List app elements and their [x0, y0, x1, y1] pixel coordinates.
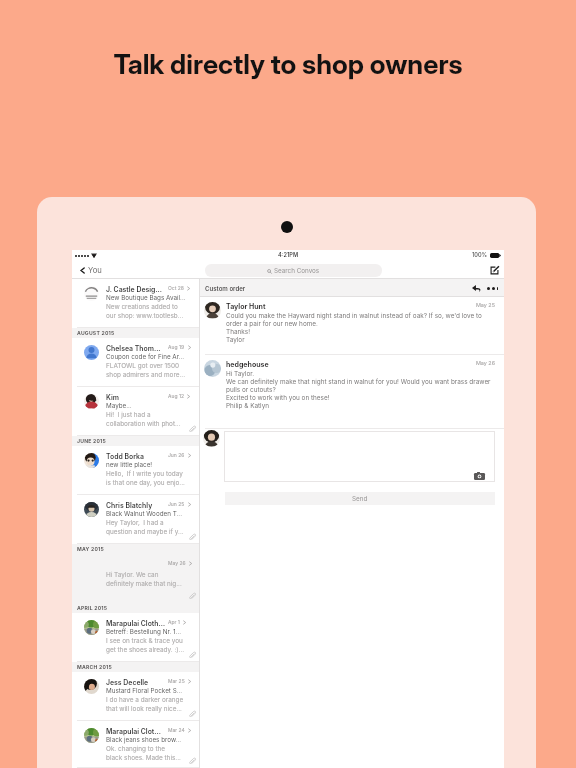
staticText: Marapulai Clot...: [106, 727, 166, 735]
staticText: hedgehouse: [226, 360, 269, 368]
button[interactable]: Oct 28: [72, 279, 199, 328]
button[interactable]: Search Convos: [205, 264, 382, 277]
staticText: Aug 19: [168, 344, 185, 350]
button[interactable]: Mar 24: [72, 721, 199, 768]
staticText: Black jeans shoes brow...: [106, 736, 182, 744]
button[interactable]: May 26: [72, 554, 199, 603]
staticText: May 26: [168, 560, 186, 566]
button[interactable]: Reply: [470, 282, 483, 295]
staticText: Chris Blatchly: [106, 501, 166, 509]
staticText: Talk directly to shop owners: [113, 48, 463, 81]
staticText: Hi Taylor. We can definitely make that n…: [106, 571, 182, 588]
staticText: We can definitely make that night stand …: [226, 378, 491, 386]
staticText: Maybe...: [106, 402, 132, 410]
button[interactable]: Aug 19: [72, 338, 199, 387]
button[interactable]: Aug 12: [72, 387, 199, 436]
button[interactable]: Apr 1: [72, 613, 199, 662]
staticText: Kim: [106, 393, 166, 401]
staticText: 4:21PM: [278, 252, 299, 259]
staticText: JUNE 2015: [77, 438, 106, 444]
staticText: New creations added to our shop: www.too…: [106, 303, 184, 320]
staticText: Jun 26: [168, 452, 185, 458]
staticText: J. Castle Desig...: [106, 285, 166, 293]
staticText: Hello, If I write you today is that one …: [106, 470, 185, 487]
staticText: May 25: [476, 302, 495, 309]
button[interactable]: Attach photo: [474, 472, 485, 480]
staticText: New Boutique Bags Avail...: [106, 294, 186, 302]
staticText: new little place!: [106, 461, 153, 469]
staticText: Taylor: [226, 336, 245, 344]
staticText: Send: [352, 495, 368, 503]
staticText: Oct 28: [168, 285, 184, 291]
staticText: Apr 1: [168, 619, 180, 625]
staticText: FLATOWL got over 1500 shop admirers and …: [106, 362, 185, 379]
button[interactable]: Jun 26: [72, 446, 199, 495]
button[interactable]: Compose new message: [487, 263, 502, 278]
staticText: Todd Borka: [106, 452, 166, 460]
staticText: Chelsea Thom...: [106, 344, 166, 352]
staticText: Hey Taylor, I had a question and maybe i…: [106, 519, 184, 536]
staticText: Mar 25: [168, 678, 185, 684]
staticText: Hi! I just had a collaboration with phot…: [106, 411, 181, 428]
button[interactable]: Send: [225, 492, 495, 505]
staticText: Jess Decelle: [106, 678, 166, 686]
staticText: Marapulai Clothi...: [106, 619, 166, 627]
staticText: Coupon code for Fine Ar...: [106, 353, 185, 361]
button[interactable]: You: [77, 261, 104, 279]
button[interactable]: Attach photo: [224, 431, 495, 482]
staticText: You: [88, 266, 102, 275]
staticText: Ok. changing to the black shoes. Made th…: [106, 745, 181, 762]
button[interactable]: More options: [486, 282, 499, 295]
button[interactable]: Mar 25: [72, 672, 199, 721]
staticText: 100%: [472, 252, 488, 259]
staticText: MARCH 2015: [77, 664, 112, 670]
staticText: Could you make the Hayward night stand i…: [226, 312, 482, 320]
staticText: May 26: [476, 360, 495, 367]
staticText: Thanks!: [226, 328, 250, 336]
staticText: Excited to work with you on these!: [226, 394, 330, 402]
staticText: Search Convos: [274, 267, 320, 275]
staticText: Taylor Hunt: [226, 302, 266, 310]
staticText: MAY 2015: [77, 546, 104, 552]
staticText: Philip & Katlyn: [226, 402, 270, 410]
staticText: Aug 12: [168, 393, 184, 399]
staticText: Mar 24: [168, 727, 185, 733]
staticText: Betreff: Bestellung Nr. 1...: [106, 628, 182, 636]
staticText: I do have a darker orange that will look…: [106, 696, 184, 713]
staticText: pulls or cutouts?: [226, 386, 276, 394]
staticText: APRIL 2015: [77, 605, 108, 611]
staticText: I see on track & trace you get the shoes…: [106, 637, 185, 654]
button[interactable]: Jun 25: [72, 495, 199, 544]
staticText: Black Walnut Wooden T...: [106, 510, 182, 518]
staticText: Hi Taylor.: [226, 370, 255, 378]
staticText: Jun 25: [168, 501, 185, 507]
staticText: Mustard Floral Pocket S...: [106, 687, 183, 695]
staticText: AUGUST 2015: [77, 330, 115, 336]
staticText: order a pair for our new home.: [226, 320, 318, 328]
staticText: Custom order: [205, 285, 246, 292]
